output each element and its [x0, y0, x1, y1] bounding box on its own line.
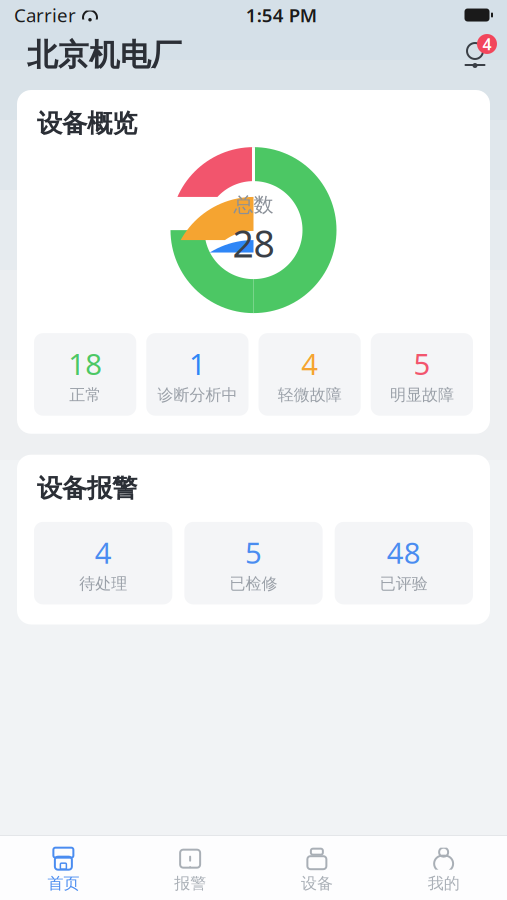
- staticText: 5: [413, 344, 430, 383]
- staticText: 诊断分析中: [157, 385, 237, 405]
- button[interactable]: 首页: [0, 839, 127, 900]
- button[interactable]: 我的: [380, 839, 507, 900]
- staticText: 设备: [301, 874, 333, 893]
- button[interactable]: 18: [34, 333, 136, 416]
- staticText: 首页: [47, 874, 79, 893]
- button[interactable]: 报警: [127, 839, 254, 900]
- staticText: 北京机电厂: [27, 36, 182, 74]
- staticText: 4: [301, 344, 318, 383]
- button[interactable]: 48: [335, 522, 473, 604]
- button[interactable]: 5: [371, 333, 473, 416]
- staticText: 设备概览: [37, 108, 137, 139]
- button[interactable]: 4: [258, 333, 361, 416]
- staticText: 5: [245, 533, 262, 572]
- staticText: 1:54 PM: [246, 3, 317, 27]
- button[interactable]: 通知: [453, 33, 497, 77]
- staticText: 设备报警: [37, 473, 137, 504]
- staticText: 明显故障: [390, 385, 454, 405]
- staticText: 48: [387, 533, 421, 572]
- staticText: 1: [189, 344, 206, 383]
- staticText: 正常: [69, 385, 101, 405]
- staticText: 18: [68, 344, 102, 383]
- staticText: 报警: [174, 874, 206, 893]
- staticText: 已检修: [229, 574, 277, 593]
- staticText: 4: [95, 533, 112, 572]
- staticText: 已评验: [380, 574, 428, 593]
- button[interactable]: 4: [34, 522, 172, 604]
- staticText: 28: [232, 218, 274, 268]
- staticText: 轻微故障: [278, 385, 342, 405]
- button[interactable]: 1: [146, 333, 248, 416]
- button[interactable]: 设备: [253, 839, 380, 900]
- staticText: 4: [482, 33, 491, 55]
- staticText: 总数: [233, 192, 273, 217]
- staticText: 我的: [428, 874, 460, 893]
- staticText: Carrier: [14, 3, 76, 27]
- staticText: 待处理: [79, 574, 127, 593]
- button[interactable]: 5: [184, 522, 323, 604]
